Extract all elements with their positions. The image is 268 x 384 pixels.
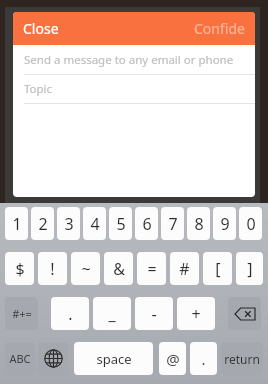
staticText: _ [108,303,116,325]
staticText: 1 [12,213,22,235]
staticText: + [191,303,201,325]
staticText: 6 [142,213,152,235]
button[interactable]: ~ [71,252,100,285]
button[interactable]: 1 [5,207,28,240]
staticText: 3 [64,213,74,235]
staticText: & [113,258,125,280]
button[interactable]: 3 [57,207,80,240]
staticText: 2 [38,213,48,235]
staticText: 9 [220,213,230,235]
staticText: $ [15,258,25,280]
button[interactable]: + [177,297,215,330]
button[interactable]: Change keyboard [38,342,68,375]
staticText: 8 [194,213,204,235]
staticText: Topic [24,81,53,97]
staticText: #+= [12,306,32,321]
staticText: space [96,350,132,368]
button[interactable]: 5 [109,207,132,240]
staticText: 5 [116,213,126,235]
button[interactable]: # [170,252,199,285]
button[interactable]: 7 [161,207,184,240]
staticText: . [201,349,206,369]
button[interactable]: 8 [187,207,210,240]
button[interactable]: Delete [228,297,261,330]
staticText: 0 [246,213,256,235]
button[interactable]: 2 [31,207,54,240]
button[interactable]: 4 [83,207,106,240]
button[interactable]: space [74,342,153,375]
staticText: ! [50,258,55,280]
button[interactable]: ! [38,252,67,285]
button[interactable]: - [135,297,173,330]
button[interactable]: . [190,342,217,375]
button[interactable]: [ [203,252,232,285]
button[interactable]: 6 [135,207,158,240]
staticText: [ [215,258,221,280]
button[interactable]: @ [159,342,186,375]
button[interactable]: #+= [5,297,38,330]
staticText: Confide [194,19,245,38]
staticText: . [68,303,73,325]
staticText: - [151,303,157,325]
button[interactable]: Close [13,12,69,45]
button[interactable]: Topic [13,75,255,103]
staticText: return [224,351,260,367]
staticText: # [179,258,190,280]
button[interactable]: & [104,252,133,285]
button[interactable]: Confide [184,12,255,45]
staticText: ] [247,258,253,280]
staticText: Send a message to any email or phone [24,52,234,68]
button[interactable]: ABC [5,342,35,375]
button[interactable]: 0 [239,207,262,240]
button[interactable]: = [137,252,166,285]
button[interactable]: 9 [213,207,236,240]
button[interactable]: ] [236,252,263,285]
staticText: = [147,258,157,280]
button[interactable]: Send a message to any email or phone [13,45,255,74]
staticText: ~ [81,258,91,280]
staticText: 7 [168,213,178,235]
staticText: @ [166,349,180,369]
button[interactable]: $ [5,252,34,285]
button[interactable]: return [221,342,263,375]
staticText: Close [23,19,59,38]
button[interactable]: _ [93,297,131,330]
staticText: 4 [90,213,100,235]
button[interactable]: . [51,297,89,330]
staticText: ABC [9,351,31,366]
